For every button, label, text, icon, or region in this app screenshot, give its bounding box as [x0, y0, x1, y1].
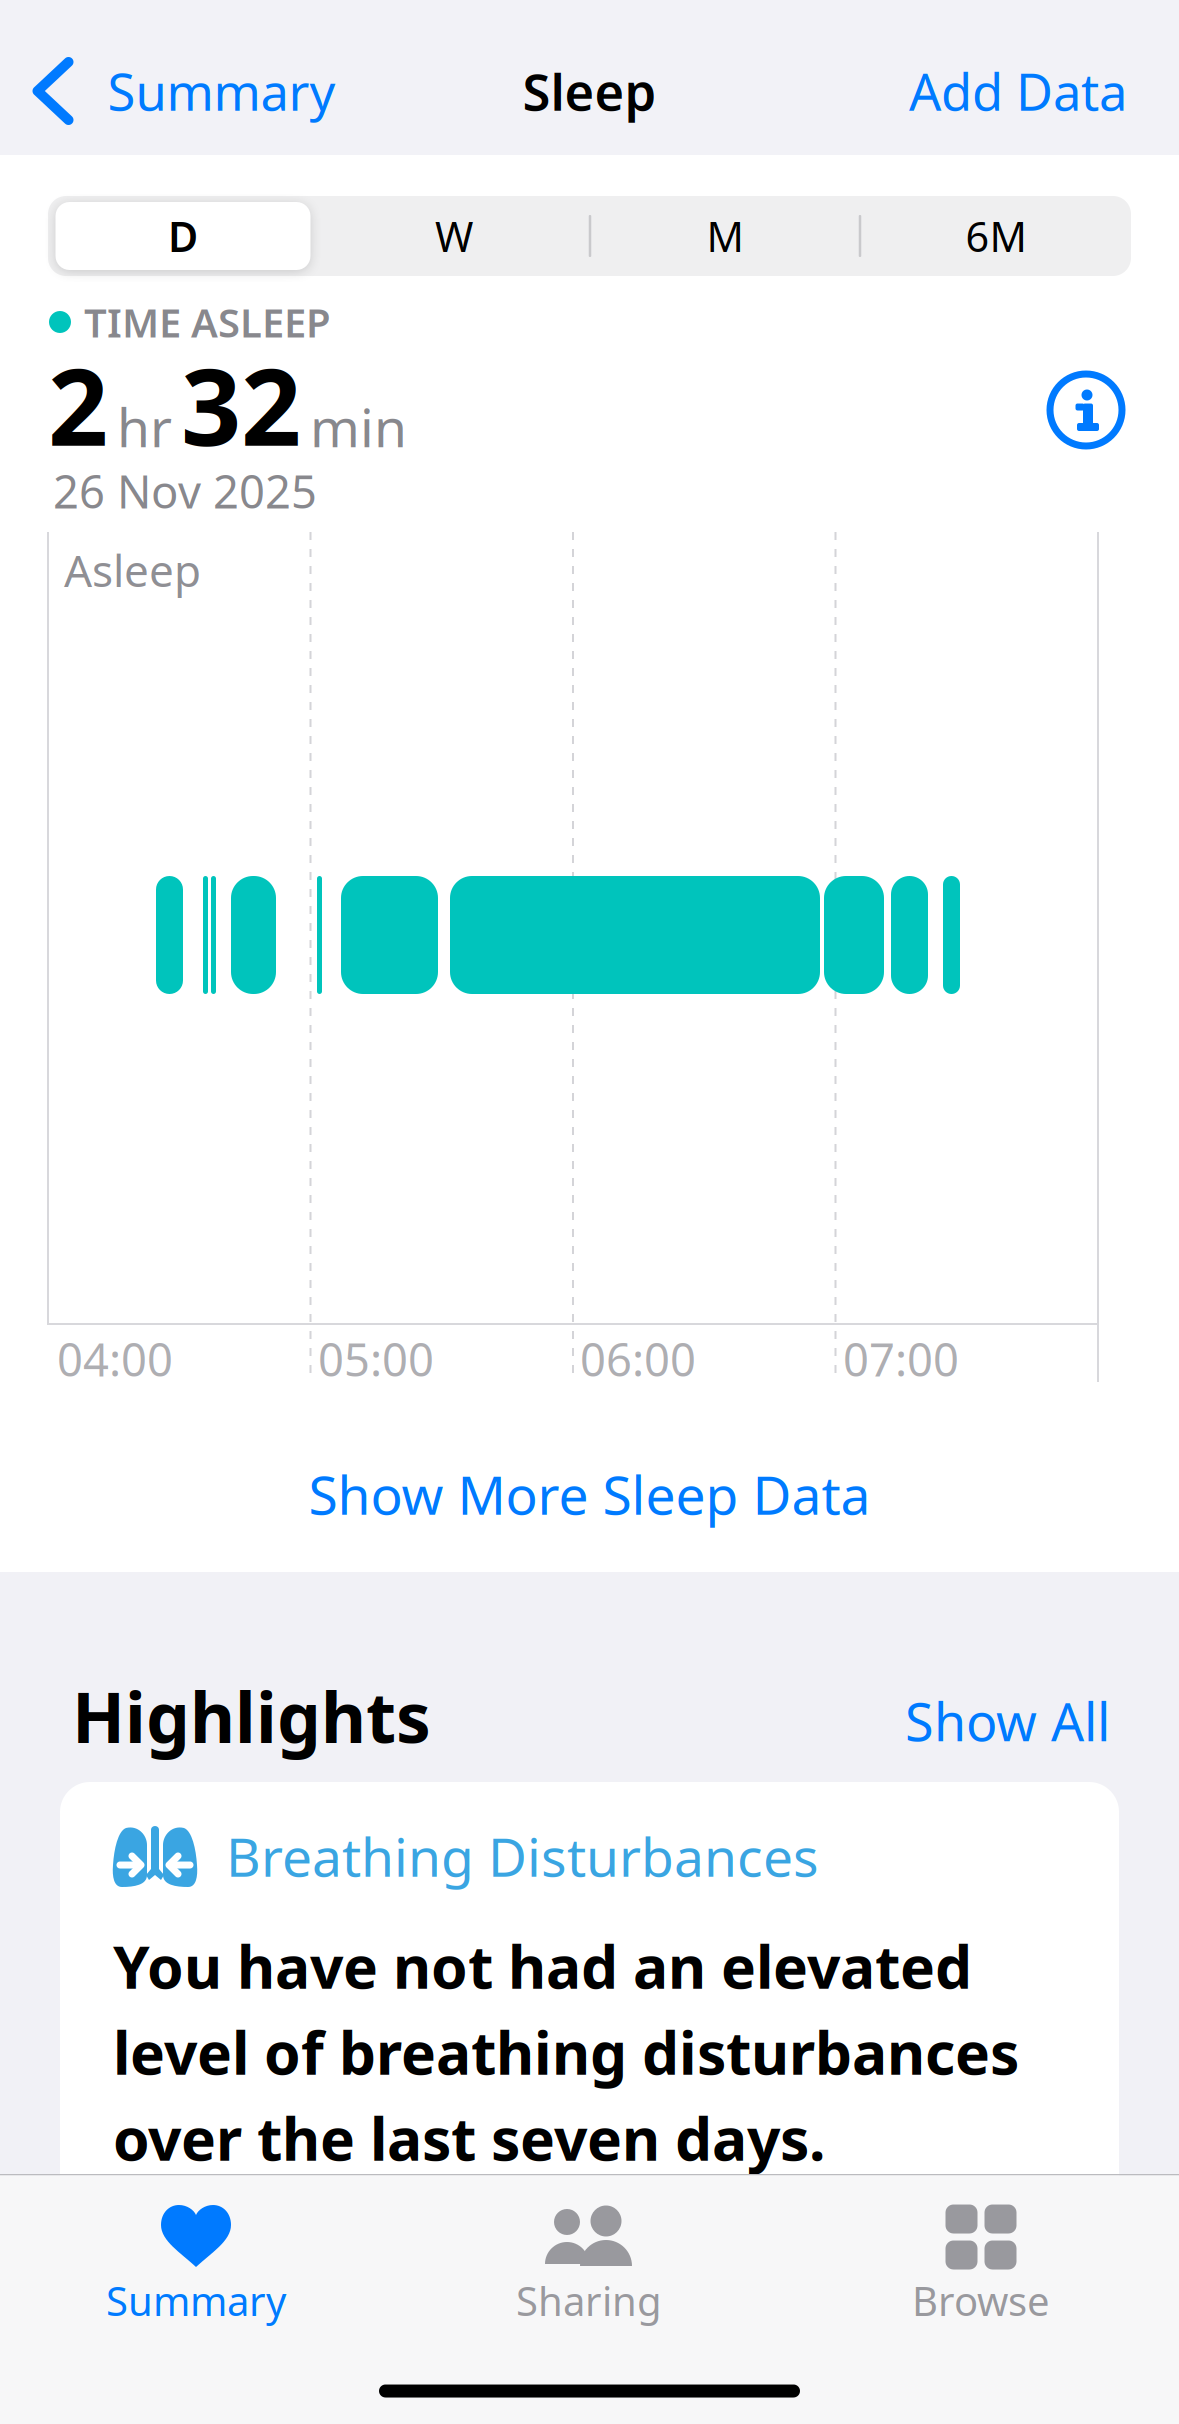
staticText: Summary — [107, 57, 335, 125]
staticText: Asleep — [64, 541, 201, 599]
staticText: level of breathing disturbances — [113, 2013, 1019, 2091]
staticText: 6M — [965, 209, 1026, 263]
button[interactable]: Add Data — [0, 0, 1179, 2424]
button[interactable]: Summary — [32, 57, 335, 125]
staticText: Sharing — [516, 2274, 662, 2327]
staticText: Highlights — [72, 1670, 431, 1762]
staticText: Sleep — [522, 57, 656, 125]
staticText: D — [168, 209, 198, 263]
button[interactable]: M — [591, 197, 859, 275]
staticText: 07:00 — [843, 1329, 959, 1389]
staticText: 04:00 — [57, 1329, 173, 1389]
staticText: Breathing Disturbances — [226, 1821, 819, 1891]
button[interactable]: Browse — [841, 2205, 1121, 2327]
staticText: 06:00 — [580, 1329, 696, 1389]
staticText: min — [310, 391, 407, 462]
staticText: TIME ASLEEP — [84, 295, 331, 348]
button[interactable]: Show More Sleep Data — [308, 1459, 870, 1529]
staticText: hr — [117, 391, 172, 462]
button[interactable]: D — [55, 202, 310, 270]
staticText: 26 Nov 2025 — [53, 461, 317, 521]
staticText: 05:00 — [318, 1329, 434, 1389]
staticText: Summary — [106, 2274, 286, 2327]
button[interactable] — [1050, 374, 1122, 446]
staticText: You have not had an elevated — [113, 1927, 972, 2005]
button[interactable]: 6M — [862, 197, 1130, 275]
staticText: Browse — [912, 2274, 1050, 2327]
staticText: over the last seven days. — [113, 2099, 825, 2177]
staticText: Show All — [905, 1686, 1110, 1756]
button[interactable] — [60, 1782, 1119, 2424]
staticText: 2 — [48, 335, 108, 475]
staticText: Add Data — [909, 57, 1127, 125]
button[interactable]: Summary — [56, 2205, 336, 2327]
button[interactable]: Show All — [0, 0, 1179, 2424]
button[interactable]: Sharing — [449, 2205, 729, 2327]
button[interactable]: W — [320, 197, 588, 275]
staticText: 32 — [181, 335, 301, 475]
staticText: Show More Sleep Data — [308, 1459, 870, 1529]
staticText: M — [706, 209, 743, 263]
staticText: W — [435, 209, 473, 263]
